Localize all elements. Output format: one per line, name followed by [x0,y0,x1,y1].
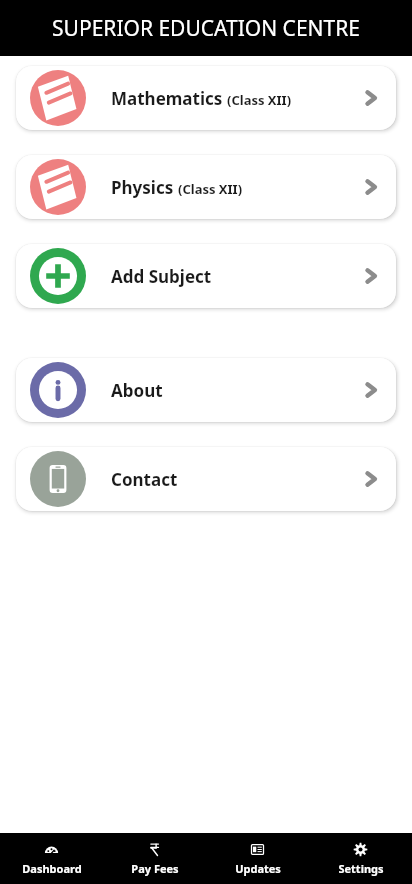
button[interactable]: Physics [16,155,396,219]
staticText: Updates [235,861,281,876]
staticText: SUPERIOR EDUCATION CENTRE [52,14,360,43]
staticText: (Class XII) [178,180,243,198]
button[interactable]: Contact [16,447,396,511]
staticText: Contact [111,468,178,491]
staticText: Dashboard [22,861,82,876]
staticText: Add Subject [111,265,212,288]
staticText: (Class XII) [227,91,292,109]
staticText: Physics [111,176,174,199]
staticText: Pay Fees [131,861,179,876]
button[interactable]: Dashboard [0,833,103,884]
staticText: Mathematics [111,87,223,110]
button[interactable]: Mathematics [16,66,396,130]
button[interactable]: Add Subject [16,244,396,308]
button[interactable]: About [16,358,396,422]
button[interactable]: Pay Fees [103,833,206,884]
staticText: About [111,379,163,402]
button[interactable]: Settings [309,833,412,884]
staticText: Settings [338,861,384,876]
button[interactable]: Updates [206,833,309,884]
